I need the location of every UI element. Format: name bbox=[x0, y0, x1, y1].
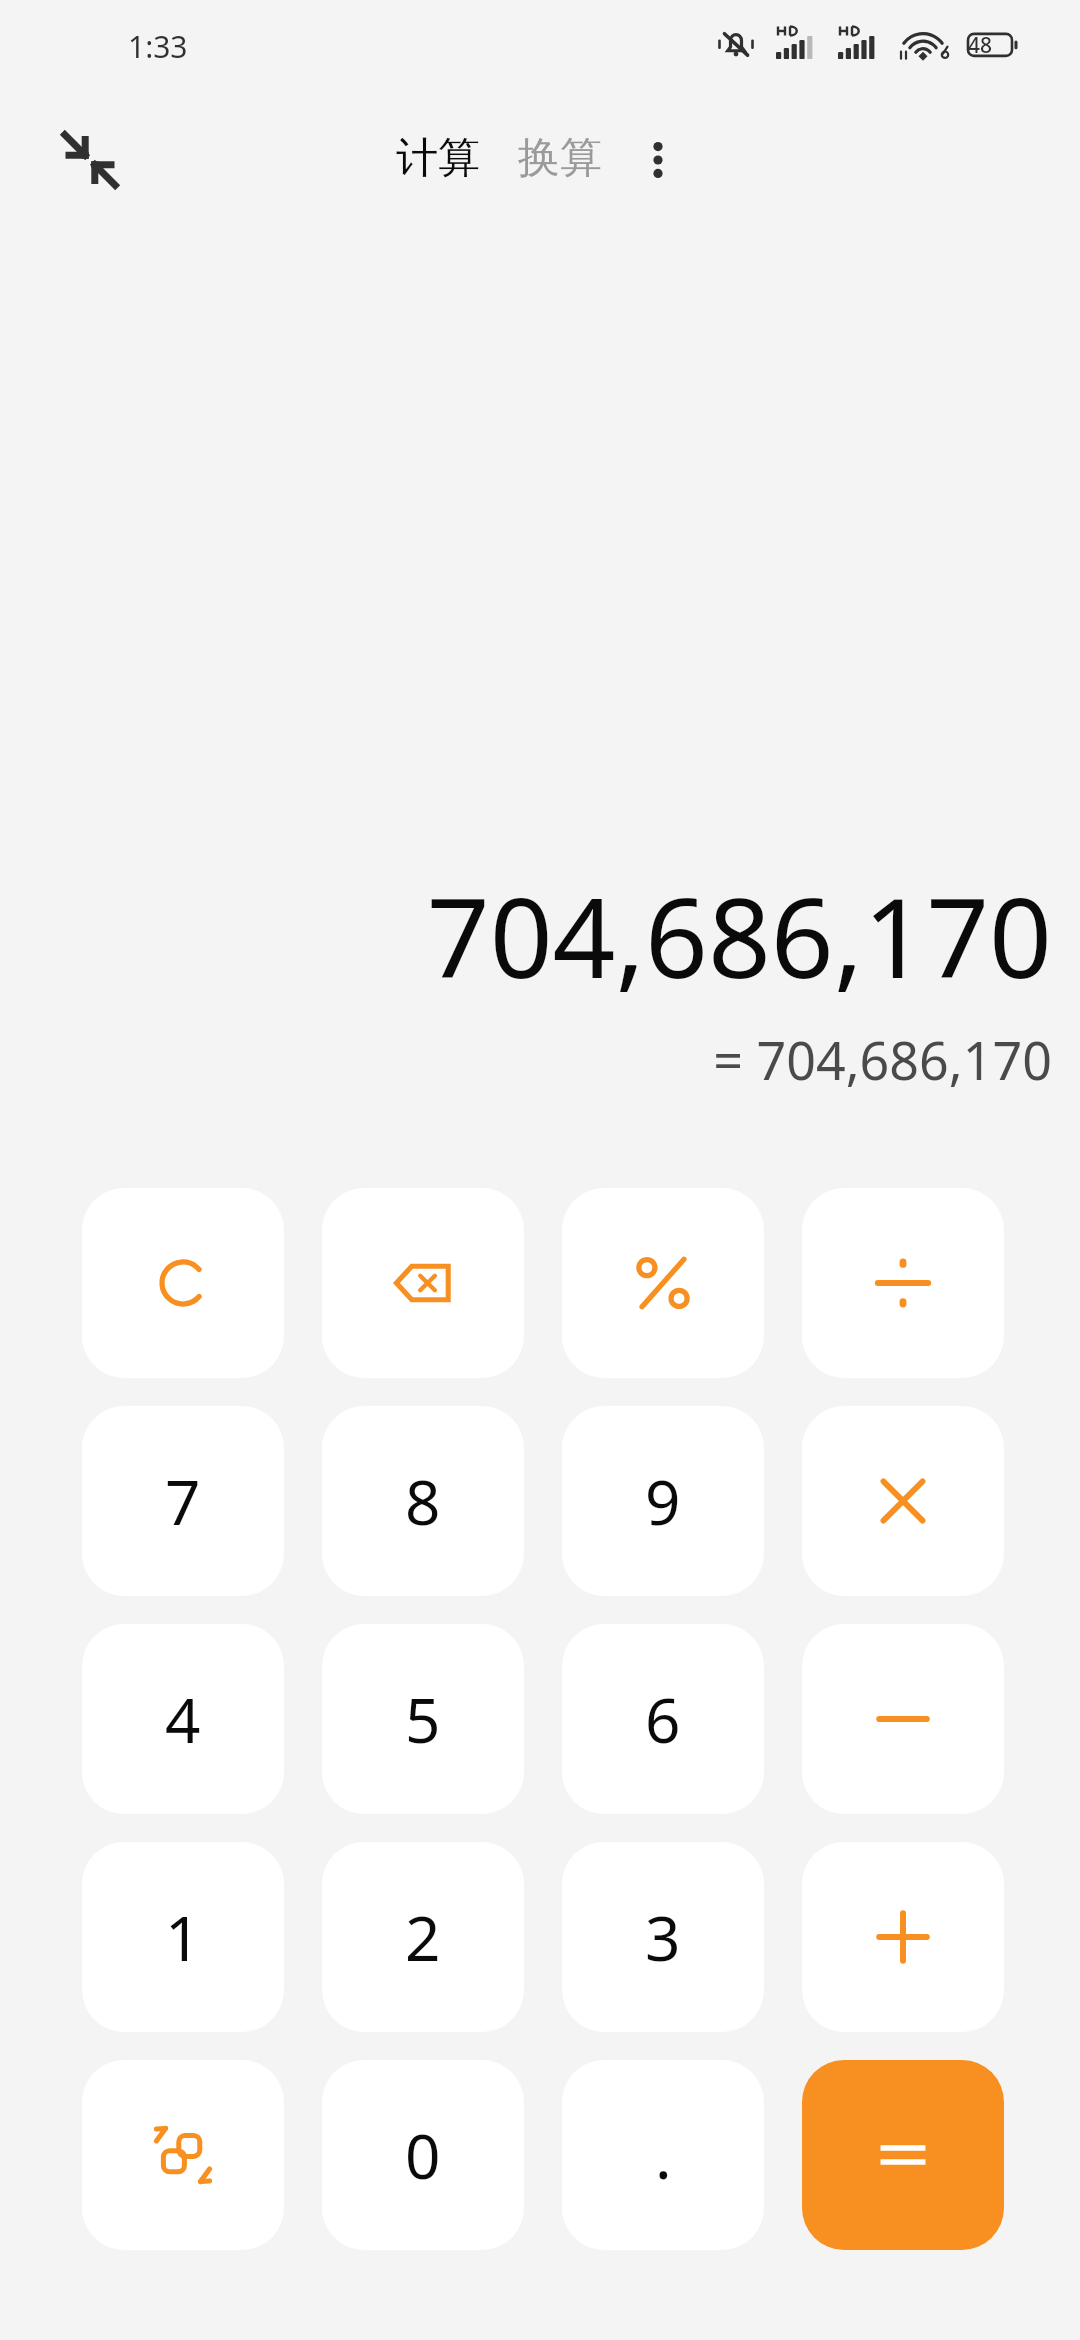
button[interactable]: 8 bbox=[322, 1406, 524, 1596]
staticText: 计算 bbox=[396, 132, 480, 185]
button[interactable]: 1 bbox=[82, 1842, 284, 2032]
staticText: 9 bbox=[645, 1459, 681, 1543]
button[interactable]: 3 bbox=[562, 1842, 764, 2032]
button[interactable]: Minus bbox=[802, 1624, 1004, 1814]
staticText: 3 bbox=[645, 1895, 681, 1979]
button[interactable]: Plus bbox=[802, 1842, 1004, 2032]
button[interactable]: Unit conversion bbox=[82, 2060, 284, 2250]
staticText: 6 bbox=[645, 1677, 681, 1761]
button[interactable]: Equals bbox=[802, 2060, 1004, 2250]
button[interactable]: 计算 bbox=[390, 128, 486, 189]
button[interactable]: 0 bbox=[322, 2060, 524, 2250]
staticText: 8 bbox=[405, 1459, 441, 1543]
button[interactable]: Collapse bbox=[42, 112, 138, 208]
staticText: 5 bbox=[405, 1677, 441, 1761]
staticText: 1 bbox=[165, 1895, 201, 1979]
button[interactable]: More options bbox=[610, 112, 706, 208]
staticText: = 704,686,170 bbox=[713, 1024, 1052, 1095]
button[interactable]: Divide bbox=[802, 1188, 1004, 1378]
button[interactable]: 4 bbox=[82, 1624, 284, 1814]
staticText: 1:33 bbox=[128, 26, 188, 67]
button[interactable]: 7 bbox=[82, 1406, 284, 1596]
button[interactable]: Percent bbox=[562, 1188, 764, 1378]
button[interactable]: 换算 bbox=[512, 128, 608, 189]
button[interactable]: Multiply bbox=[802, 1406, 1004, 1596]
staticText: 2 bbox=[405, 1895, 441, 1979]
button[interactable]: Clear bbox=[82, 1188, 284, 1378]
button[interactable]: Backspace bbox=[322, 1188, 524, 1378]
staticText: . bbox=[655, 2113, 672, 2197]
staticText: 704,686,170 bbox=[426, 860, 1052, 1010]
staticText: 4 bbox=[165, 1677, 201, 1761]
button[interactable]: . bbox=[562, 2060, 764, 2250]
staticText: 7 bbox=[165, 1459, 201, 1543]
button[interactable]: 5 bbox=[322, 1624, 524, 1814]
staticText: 0 bbox=[405, 2113, 441, 2197]
staticText: 48 bbox=[968, 31, 993, 60]
button[interactable]: 9 bbox=[562, 1406, 764, 1596]
button[interactable]: 6 bbox=[562, 1624, 764, 1814]
staticText: 换算 bbox=[518, 132, 602, 185]
button[interactable]: 2 bbox=[322, 1842, 524, 2032]
